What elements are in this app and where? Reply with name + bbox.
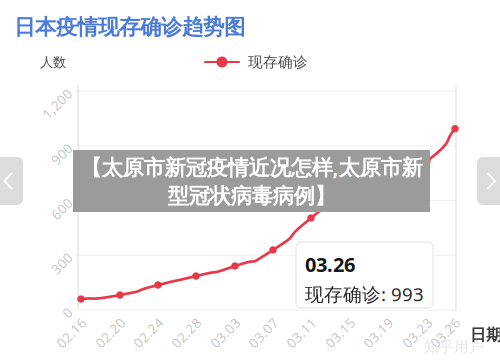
staticText: 日本疫情现存确诊趋势图 [14, 14, 245, 40]
staticText: 型冠状病毒病例】 [167, 183, 335, 209]
staticText: 现存确诊: 993 [305, 282, 424, 306]
staticText: 03.26 [305, 251, 355, 278]
staticText: 03.19 [360, 324, 396, 341]
staticText: 02.28 [168, 324, 204, 341]
staticText: 03.11 [283, 324, 319, 341]
staticText: 1,200 [39, 95, 75, 113]
staticText: 知乎用户 [424, 338, 484, 356]
button[interactable]: Previous image [0, 157, 23, 205]
staticText: 02.20 [92, 324, 128, 341]
staticText: 现存确诊 [248, 53, 308, 71]
staticText: 600 [50, 200, 74, 217]
staticText: 300 [50, 254, 74, 272]
staticText: 03.03 [207, 324, 243, 341]
staticText: 02.16 [53, 324, 89, 341]
button[interactable]: Next image [477, 157, 500, 205]
staticText: 03.07 [245, 324, 281, 341]
staticText: 0 [63, 304, 71, 321]
staticText: 03.23 [399, 324, 435, 341]
staticText: 【太原市新冠疫情近况怎样,太原市新 [80, 153, 422, 181]
staticText: 02.24 [130, 324, 166, 341]
staticText: 03.26 [427, 324, 463, 341]
staticText: 日期 [470, 325, 500, 345]
staticText: 900 [50, 145, 74, 163]
staticText: 03.15 [322, 324, 358, 341]
staticText: 人数 [40, 54, 66, 70]
